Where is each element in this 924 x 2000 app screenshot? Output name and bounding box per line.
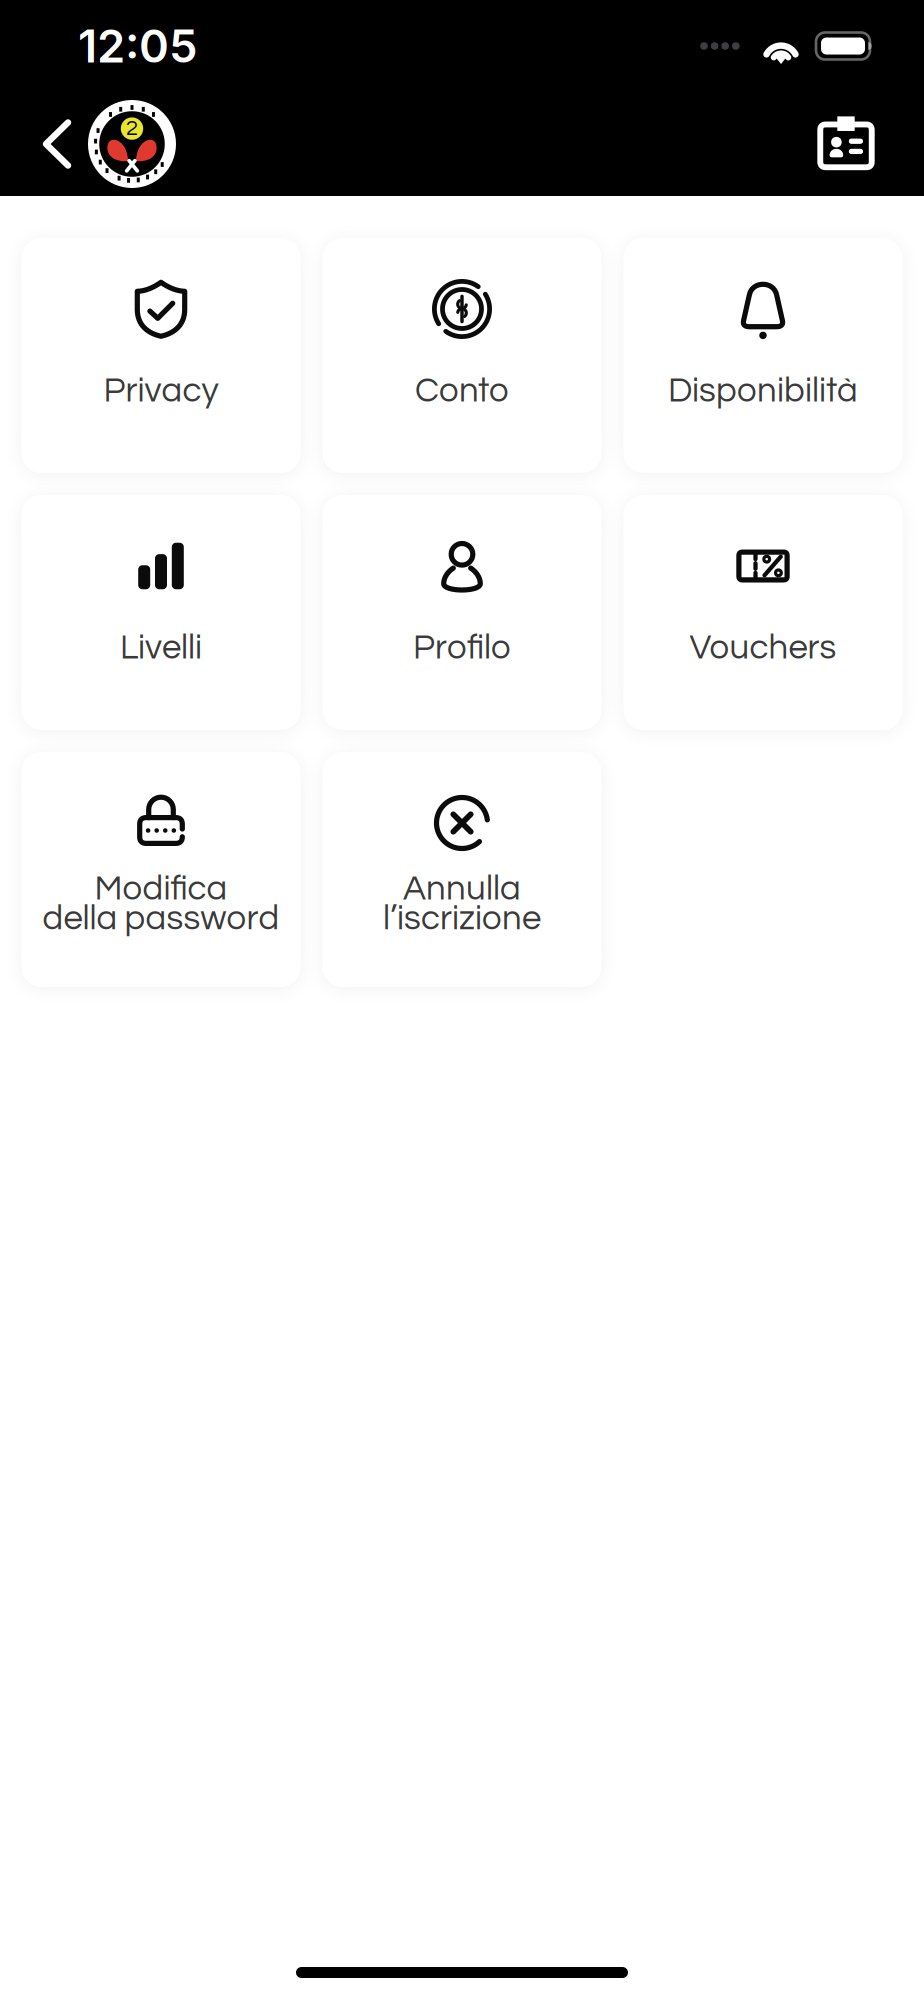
button[interactable]: Privacy xyxy=(21,238,300,473)
button[interactable]: Tessera socio xyxy=(804,101,888,187)
staticText: Livelli xyxy=(120,630,202,666)
button[interactable]: Conto xyxy=(322,238,601,473)
staticText: 2 xyxy=(126,117,138,140)
button[interactable]: Livelli xyxy=(21,495,300,730)
button[interactable]: Indietro xyxy=(26,101,88,187)
staticText: Conto xyxy=(415,373,509,409)
staticText: 12:05 xyxy=(78,19,198,73)
staticText: Disponibilità xyxy=(668,373,858,409)
staticText: Annulla xyxy=(403,871,521,907)
staticText: Profilo xyxy=(413,630,511,666)
staticText: l’iscrizione xyxy=(383,901,541,936)
staticText: della password xyxy=(42,901,279,936)
button[interactable]: Vouchers xyxy=(623,495,902,730)
button[interactable]: Annulla xyxy=(322,752,601,987)
button[interactable]: Disponibilità xyxy=(623,238,902,473)
button[interactable]: Profilo xyxy=(322,495,601,730)
staticText: Privacy xyxy=(103,373,218,409)
staticText: Vouchers xyxy=(689,630,836,666)
staticText: Modifica xyxy=(94,871,227,907)
button[interactable]: Modifica xyxy=(21,752,300,987)
